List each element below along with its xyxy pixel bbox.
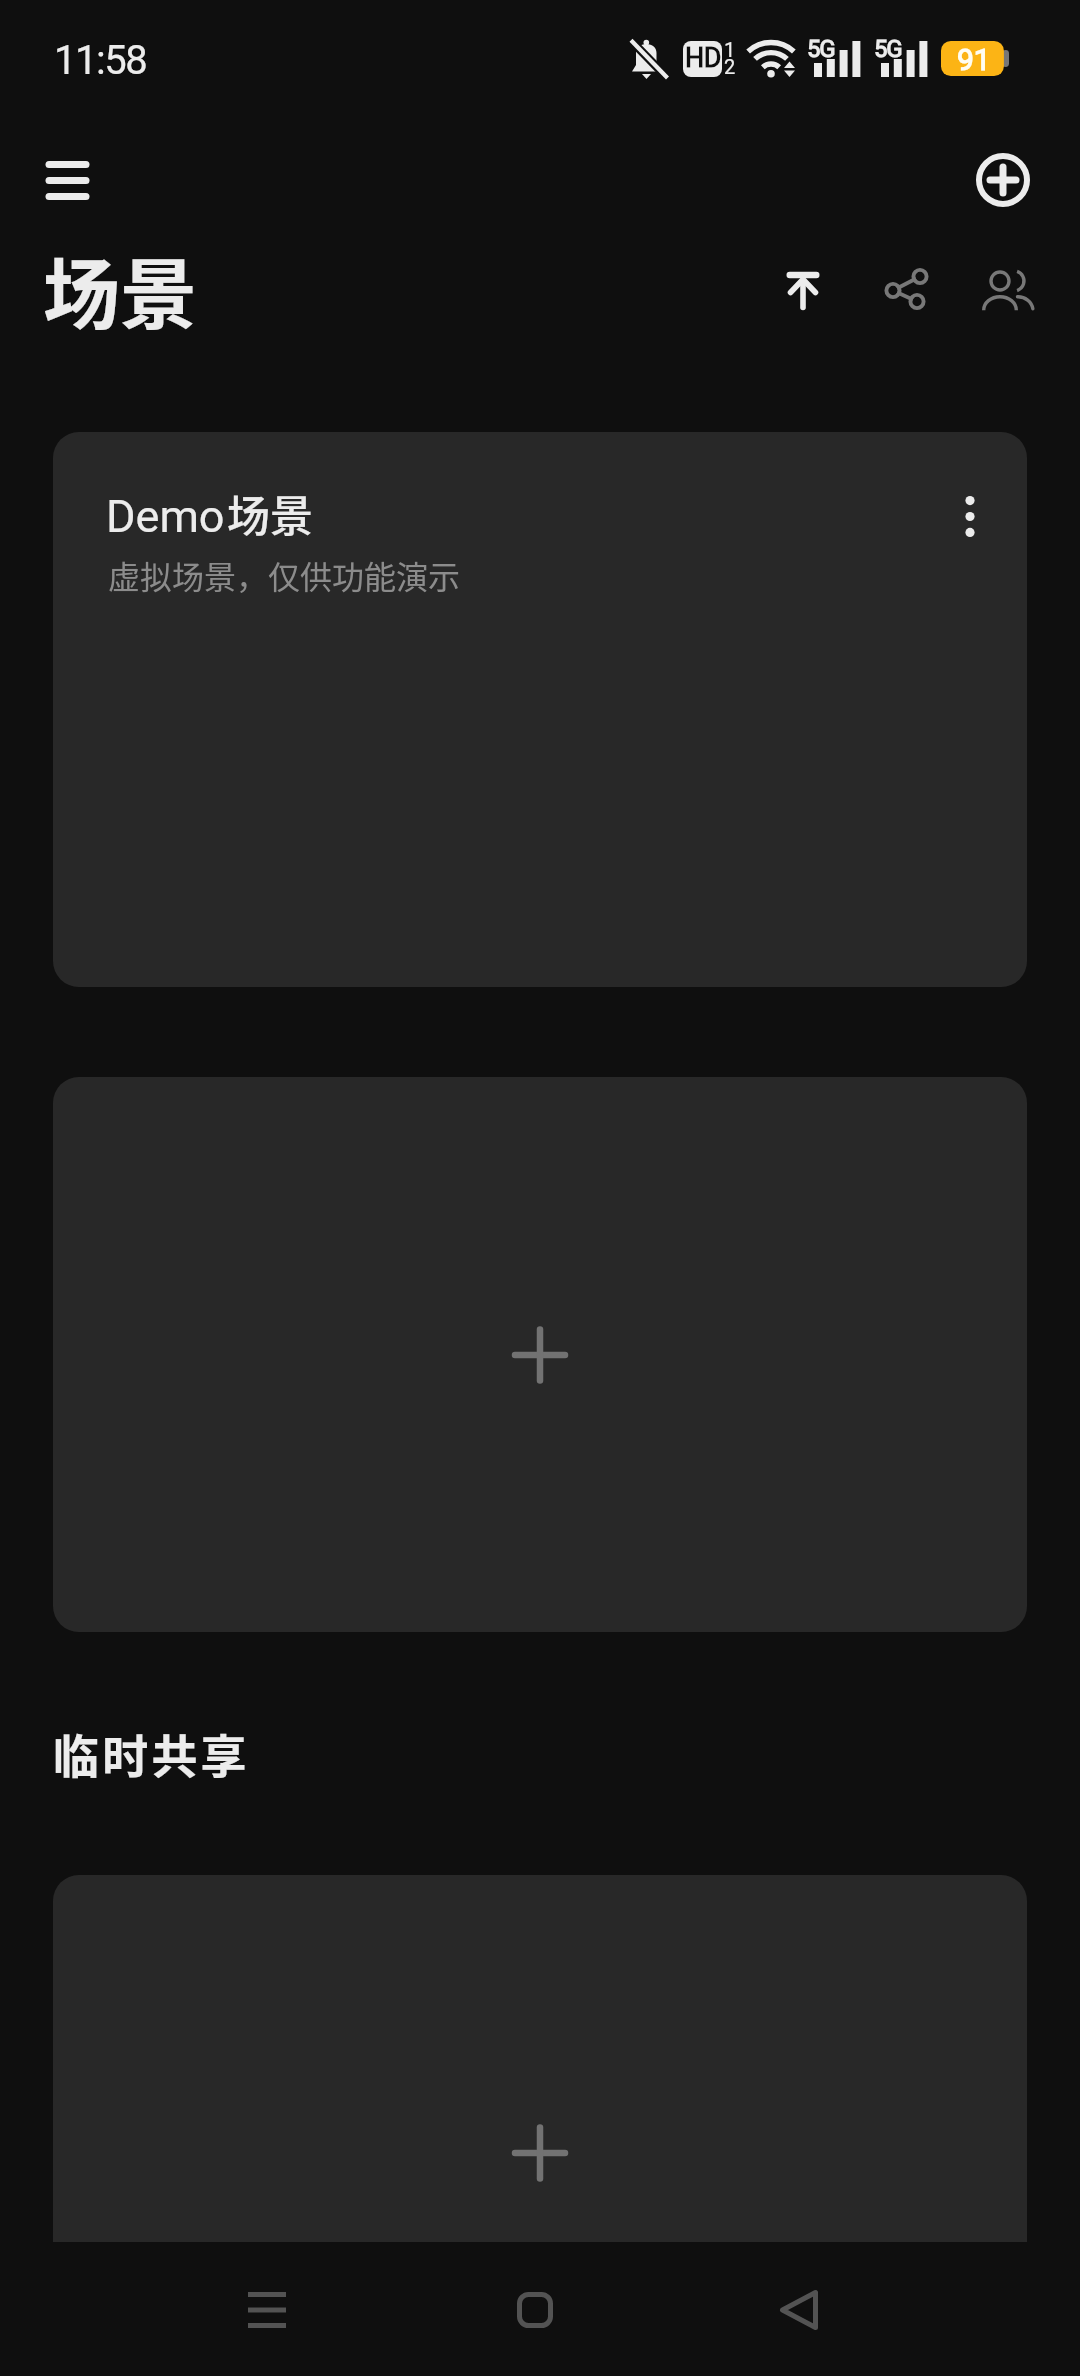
staticText: 1 [724, 38, 736, 61]
button[interactable]: Add [968, 145, 1038, 215]
staticText: 场景 [227, 482, 313, 544]
staticText: 91 [957, 42, 991, 77]
button[interactable]: Add scene b [53, 1875, 1027, 2376]
staticText: 临时共享 [53, 1720, 250, 1787]
button[interactable]: Menu [25, 138, 109, 222]
button[interactable]: Back [739, 2250, 859, 2370]
button[interactable]: Demo [53, 432, 1027, 987]
button[interactable]: Members [966, 250, 1048, 332]
button[interactable]: More options [925, 460, 1015, 572]
button[interactable]: Home [475, 2250, 595, 2370]
staticText: 虚拟场景，仅供功能演示 [108, 552, 461, 598]
staticText: 5G [874, 35, 902, 63]
staticText: HD [685, 42, 721, 74]
staticText: 5G [807, 35, 835, 63]
staticText: Demo [106, 490, 225, 543]
staticText: 11:58 [54, 37, 147, 84]
button[interactable]: Share [864, 249, 946, 331]
button[interactable]: Upload [762, 250, 844, 332]
staticText: 2 [724, 55, 736, 78]
button[interactable]: Recent apps [207, 2250, 327, 2370]
staticText: 场景 [43, 234, 197, 345]
